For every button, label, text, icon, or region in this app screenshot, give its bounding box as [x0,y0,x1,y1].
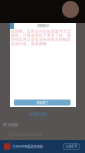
staticText: 我知道了 [36,100,48,105]
staticText: 很抱歉，您所访问的视频暂时无法播放，可能是版权方要求下线，请您稍后再试或者选择观… [11,29,71,46]
staticText: 热门短视频 [3,123,18,127]
button[interactable]: 我知道了 [14,99,70,105]
staticText: 视频提示 [37,23,49,28]
staticText: 立即打开 [65,144,77,149]
button[interactable]: 立即打开 [63,143,80,149]
staticText: 打开APP观看更多视频 [12,144,42,149]
staticText: 更多精彩内容尽在客户端 [9,132,42,137]
staticText: 相关推荐视频 [29,112,47,117]
